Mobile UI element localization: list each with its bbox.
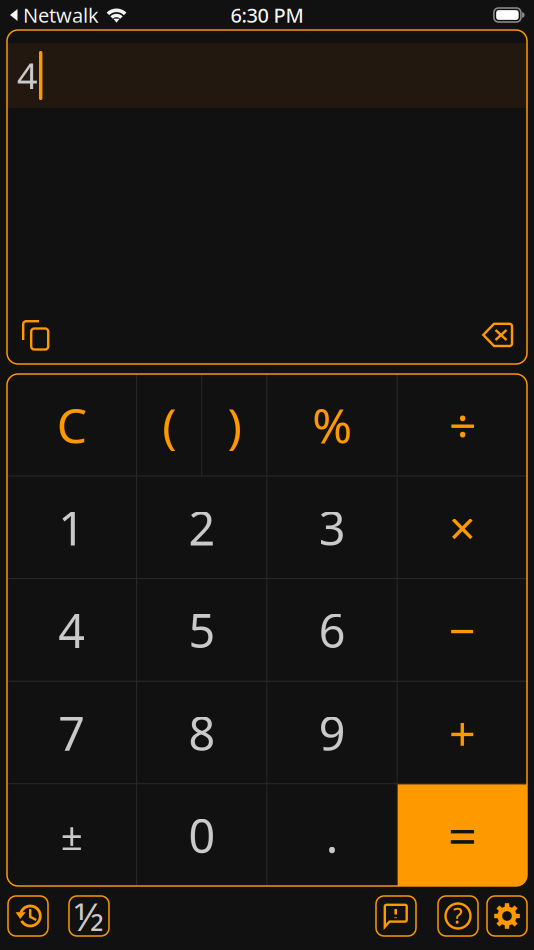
button[interactable]: Feedback [376,896,416,936]
button[interactable]: = [398,784,527,886]
button[interactable]: . [267,784,397,886]
button[interactable]: 7 [7,682,136,783]
staticText: = [448,802,477,869]
staticText: 6 [319,599,346,661]
button[interactable]: 6 [267,579,397,681]
staticText: ½ [74,890,104,942]
button[interactable]: ½ [69,896,109,936]
staticText: 5 [188,599,215,661]
staticText: + [449,702,476,764]
button[interactable]: Copy [22,320,49,350]
staticText: × [449,496,476,558]
button[interactable]: History [8,896,48,936]
staticText: ) [227,393,241,457]
staticText: C [57,393,87,457]
staticText: − [449,599,476,661]
staticText: 2 [188,496,215,558]
staticText: ÷ [449,393,476,457]
button[interactable]: Settings [487,896,527,936]
staticText: 3 [319,496,346,558]
staticText: . [326,804,339,866]
button[interactable]: ) [202,374,266,476]
staticText: 7 [58,702,85,764]
staticText: ? [453,901,463,930]
button[interactable]: 4 [7,579,136,681]
button[interactable]: ( [137,374,201,476]
button[interactable]: + [398,682,527,783]
button[interactable]: 8 [137,682,266,783]
staticText: 0 [188,804,215,866]
button[interactable]: C [7,374,136,476]
button[interactable]: × [398,477,527,578]
staticText: 1 [58,496,85,558]
button[interactable]: 2 [137,477,266,578]
button[interactable]: Help [438,896,478,936]
staticText: 8 [188,702,215,764]
staticText: 4 [17,52,38,99]
button[interactable]: Delete [482,322,513,347]
button[interactable]: % [267,374,397,476]
button[interactable]: 3 [267,477,397,578]
staticText: 6:30 PM [230,2,303,28]
button[interactable]: 5 [137,579,266,681]
button[interactable]: − [398,579,527,681]
button[interactable]: 9 [267,682,397,783]
staticText: 4 [58,599,85,661]
staticText: 9 [319,702,346,764]
staticText: % [312,393,352,457]
button[interactable]: ÷ [398,374,527,476]
staticText: Netwalk [23,2,99,28]
button[interactable]: 1 [7,477,136,578]
button[interactable]: 0 [137,784,266,886]
staticText: ± [61,809,83,861]
button[interactable]: ± [7,784,136,886]
staticText: ( [162,393,176,457]
